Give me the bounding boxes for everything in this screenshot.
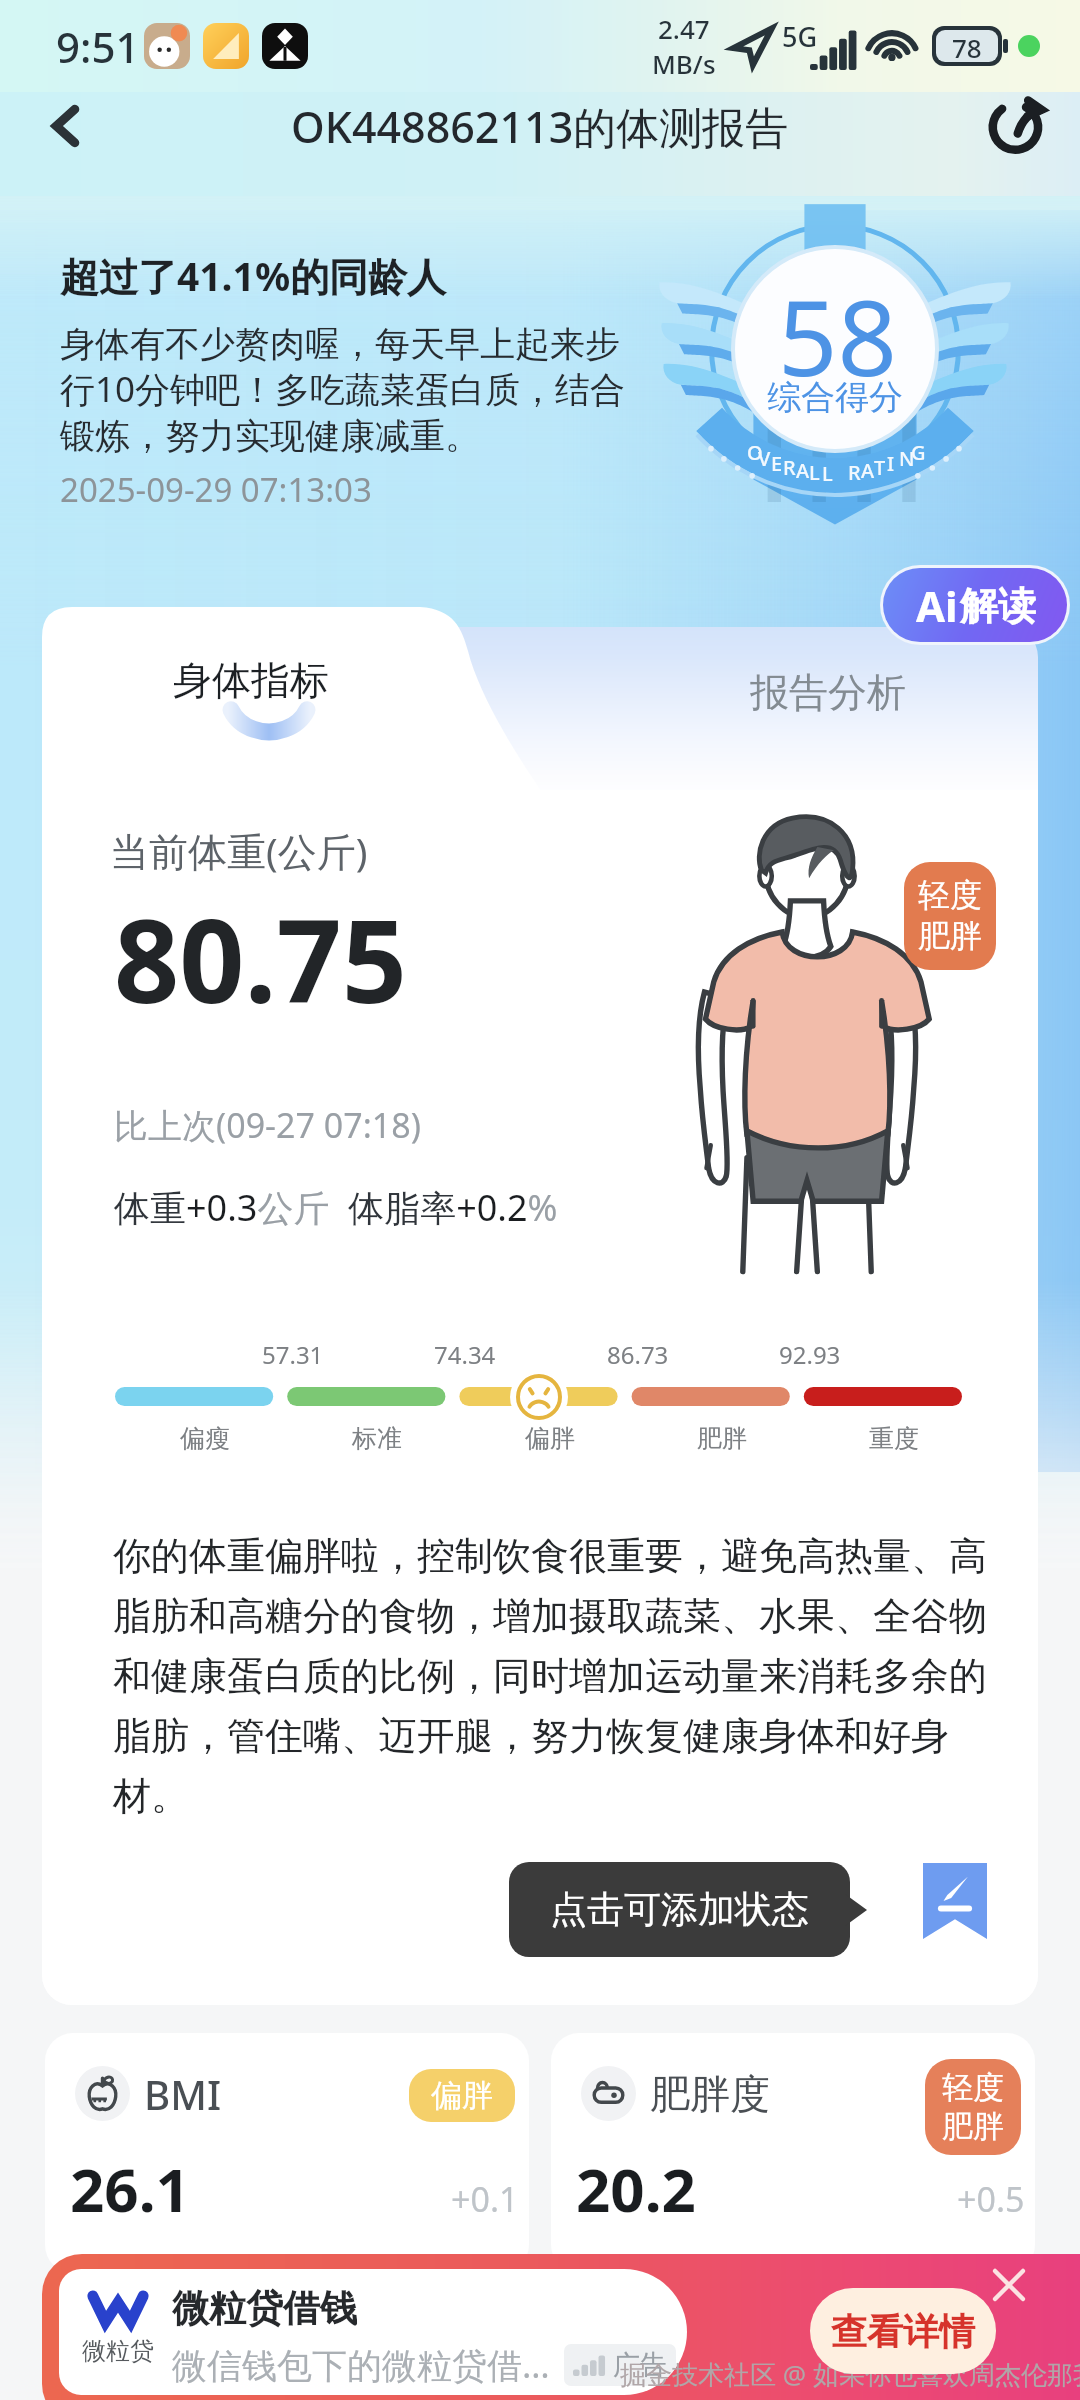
staticText: V	[758, 445, 771, 472]
button[interactable]: 查看详情	[810, 2288, 996, 2374]
staticText: R	[783, 454, 796, 481]
staticText: 当前体重(公斤)	[110, 824, 368, 877]
staticText: 5G	[782, 18, 818, 55]
staticText: N	[899, 445, 915, 472]
staticText: 20.2	[576, 2148, 696, 2230]
staticText: 掘金技术社区 @ 如果你也喜欢周杰伦那我们就是好朋友	[620, 2356, 1080, 2392]
staticText: 86.73	[607, 1338, 669, 1371]
staticText: 偏瘦	[180, 1423, 230, 1454]
staticText: 标准	[352, 1423, 402, 1454]
button[interactable]: Back	[24, 84, 108, 168]
staticText: G	[911, 439, 926, 466]
staticText: 轻度 肥胖	[918, 875, 982, 957]
staticText: 2025-09-29 07:13:03	[60, 467, 372, 512]
button[interactable]: 点击可添加状态	[509, 1862, 850, 1957]
button[interactable]: Ai	[883, 568, 1067, 642]
staticText: 比上次(09-27 07:18)	[114, 1102, 421, 1148]
staticText: 9:51	[56, 18, 140, 75]
staticText: L	[822, 460, 833, 487]
staticText: 报告分析	[750, 668, 906, 717]
staticText: 26.1	[70, 2148, 190, 2230]
staticText: 你的体重偏胖啦，控制饮食很重要，避免高热量、高 脂肪和高糖分的食物，增加摄取蔬菜…	[113, 1532, 987, 1820]
staticText: 肥胖度	[650, 2069, 770, 2119]
button[interactable]: 报告分析	[712, 652, 944, 732]
staticText: +0.5	[957, 2176, 1025, 2222]
staticText: BMI	[144, 2067, 222, 2121]
button[interactable]: Close	[982, 2258, 1036, 2312]
staticText: 78	[952, 30, 982, 62]
staticText: T	[874, 454, 886, 481]
staticText: 超过了41.1%的同龄人	[60, 249, 447, 302]
staticText: 体重+0.3公斤 体脂率+0.2%	[114, 1183, 558, 1232]
button[interactable]: 肥胖度	[551, 2033, 1035, 2273]
staticText: OK448862113的体测报告	[291, 97, 789, 156]
staticText: A	[796, 457, 810, 484]
staticText: 偏胖	[431, 2076, 493, 2115]
staticText: 身体指标	[173, 656, 329, 705]
staticText: Ai	[916, 577, 958, 634]
staticText: O	[747, 439, 763, 466]
staticText: 57.31	[262, 1338, 324, 1371]
staticText: 综合得分	[767, 376, 903, 419]
staticText: MB/s	[652, 46, 716, 81]
staticText: +0.1	[451, 2176, 519, 2222]
button[interactable]: BMI	[45, 2033, 529, 2273]
staticText: 重度	[869, 1423, 919, 1454]
button[interactable]: 身体指标	[42, 607, 562, 807]
staticText: 广告	[613, 2348, 667, 2382]
staticText: 58	[778, 265, 897, 407]
staticText: 微粒贷借钱	[172, 2285, 357, 2332]
staticText: 解读	[960, 582, 1036, 630]
button[interactable]: Refresh	[974, 84, 1058, 168]
staticText: 74.34	[434, 1338, 496, 1371]
staticText: 80.75	[114, 881, 407, 1036]
staticText: I	[887, 450, 895, 477]
staticText: 点击可添加状态	[550, 1886, 809, 1933]
staticText: 微信钱包下的微粒贷借…	[172, 2341, 550, 2389]
staticText: 查看详情	[831, 2309, 975, 2354]
staticText: 92.93	[779, 1338, 841, 1371]
staticText: 身体有不少赘肉喔，每天早上起来步 行10分钟吧！多吃蔬菜蛋白质，结合 锻炼，努力…	[60, 322, 626, 458]
staticText: 偏胖	[525, 1423, 575, 1454]
staticText: 2.47	[658, 11, 710, 46]
staticText: E	[771, 450, 783, 477]
button[interactable]: Edit	[923, 1863, 987, 1939]
staticText: L	[809, 459, 820, 486]
staticText: A	[861, 457, 875, 484]
staticText: 肥胖	[697, 1423, 747, 1454]
staticText: 轻度 肥胖	[942, 2068, 1004, 2146]
staticText: R	[848, 459, 861, 486]
staticText: 微粒贷	[82, 2336, 154, 2366]
